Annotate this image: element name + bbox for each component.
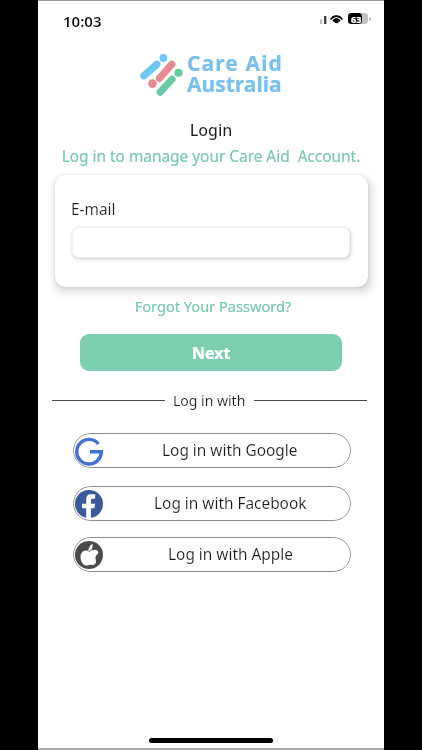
staticText: Login [38,119,384,141]
staticText: 63 [351,13,362,24]
staticText: Australia [187,70,282,99]
button[interactable]: Log in with Apple [73,537,351,572]
button[interactable] [72,227,350,258]
staticText: 10:03 [63,11,102,31]
staticText: Log in with [173,391,246,410]
button[interactable]: Log in with Google [73,433,351,468]
staticText: Care Aid [187,49,283,78]
staticText: Next [192,342,231,364]
button[interactable]: Log in with Facebook [73,486,351,521]
staticText: Log in with Apple [168,544,293,565]
button[interactable]: Forgot Your Password? [40,296,386,316]
button[interactable]: Next [80,334,342,371]
staticText: Log in with Google [162,440,298,461]
staticText: Log in with Facebook [154,493,307,514]
staticText: E-mail [71,199,116,220]
staticText: Log in to manage your Care Aid Account. [38,146,384,167]
